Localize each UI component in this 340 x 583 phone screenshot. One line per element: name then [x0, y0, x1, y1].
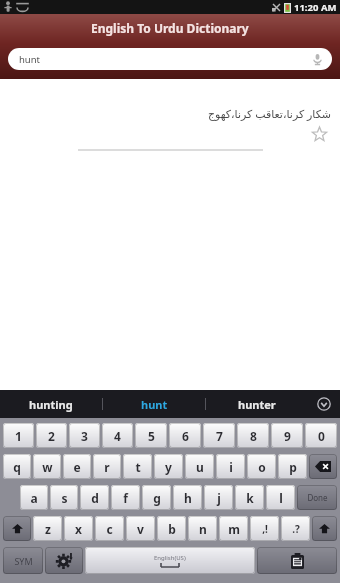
staticText: 4	[114, 428, 121, 444]
staticText: t	[135, 459, 141, 475]
staticText: 5	[148, 428, 155, 444]
button[interactable]: Space	[85, 547, 255, 574]
staticText: i	[229, 459, 233, 475]
button[interactable]: Shift	[3, 516, 31, 541]
staticText: s	[61, 490, 68, 506]
staticText: English(US)	[154, 554, 186, 562]
button[interactable]: 3	[69, 423, 100, 448]
button[interactable]: w	[33, 454, 61, 479]
button[interactable]: 7	[203, 423, 235, 448]
staticText: hunt	[19, 53, 41, 66]
button[interactable]: p	[278, 454, 307, 479]
staticText: hunt	[141, 397, 168, 412]
staticText: 8	[250, 428, 257, 444]
button[interactable]: 1	[3, 423, 34, 448]
button[interactable]: .?	[281, 516, 310, 541]
staticText: 2	[48, 428, 55, 444]
staticText: ,!	[262, 522, 268, 536]
button[interactable]: Done	[297, 485, 337, 510]
button[interactable]: v	[126, 516, 155, 541]
button[interactable]: 8	[237, 423, 269, 448]
staticText: x	[75, 521, 82, 537]
staticText: k	[246, 490, 254, 506]
button[interactable]: c	[95, 516, 124, 541]
button[interactable]: hunter	[206, 390, 308, 418]
button[interactable]: hunt	[103, 390, 205, 418]
staticText: v	[137, 521, 144, 537]
button[interactable]: ,!	[250, 516, 279, 541]
staticText: f	[123, 490, 128, 506]
staticText: d	[91, 490, 99, 506]
staticText: g	[153, 490, 161, 506]
button[interactable]: Add to favourites	[310, 125, 328, 143]
staticText: u	[196, 459, 204, 475]
button[interactable]: hunting	[0, 390, 102, 418]
staticText: .?	[292, 522, 300, 536]
button[interactable]: u	[185, 454, 214, 479]
button[interactable]: r	[93, 454, 121, 479]
button[interactable]: x	[64, 516, 93, 541]
staticText: a	[30, 490, 38, 506]
button[interactable]: More suggestions	[308, 390, 340, 418]
button[interactable]: m	[219, 516, 248, 541]
button[interactable]: 4	[102, 423, 133, 448]
staticText: hunting	[29, 397, 73, 412]
staticText: SYM	[14, 555, 33, 567]
staticText: y	[165, 459, 172, 475]
button[interactable]: h	[173, 485, 202, 510]
staticText: 1	[15, 428, 22, 444]
button[interactable]: n	[188, 516, 217, 541]
button[interactable]: z	[33, 516, 62, 541]
button[interactable]: e	[63, 454, 91, 479]
button[interactable]: k	[235, 485, 264, 510]
button[interactable]: i	[216, 454, 245, 479]
staticText: 11:20 AM	[294, 1, 337, 14]
button[interactable]: Shift	[312, 516, 337, 541]
staticText: p	[289, 459, 297, 475]
button[interactable]: Backspace	[309, 454, 337, 479]
button[interactable]: 6	[169, 423, 201, 448]
button[interactable]: q	[3, 454, 31, 479]
staticText: z	[45, 521, 51, 537]
staticText: j	[217, 490, 221, 506]
button[interactable]: d	[80, 485, 109, 510]
button[interactable]: 9	[271, 423, 303, 448]
staticText: r	[104, 459, 110, 475]
staticText: m	[228, 521, 240, 537]
staticText: شکار کرنا،تعاقب کرنا،کھوج	[0, 106, 331, 121]
button[interactable]: SYM	[3, 547, 43, 574]
button[interactable]: t	[123, 454, 152, 479]
button[interactable]: o	[247, 454, 276, 479]
button[interactable]: 0	[305, 423, 337, 448]
staticText: o	[258, 459, 266, 475]
staticText: w	[42, 459, 53, 475]
button[interactable]: Clipboard	[257, 547, 337, 574]
button[interactable]: hunt	[8, 48, 332, 70]
button[interactable]: f	[111, 485, 140, 510]
button[interactable]: 2	[36, 423, 67, 448]
staticText: 9	[284, 428, 291, 444]
button[interactable]: g	[142, 485, 171, 510]
button[interactable]: Voice search	[309, 51, 325, 67]
staticText: 0	[318, 428, 325, 444]
staticText: l	[279, 490, 283, 506]
staticText: h	[184, 490, 192, 506]
button[interactable]: y	[154, 454, 183, 479]
button[interactable]: j	[204, 485, 233, 510]
staticText: q	[13, 459, 21, 475]
button[interactable]: Keyboard settings	[45, 547, 83, 574]
staticText: e	[73, 459, 81, 475]
staticText: b	[168, 521, 176, 537]
staticText: English To Urdu Dictionary	[91, 20, 249, 36]
staticText: Done	[307, 492, 328, 503]
staticText: n	[199, 521, 207, 537]
button[interactable]: b	[157, 516, 186, 541]
button[interactable]: a	[20, 485, 48, 510]
button[interactable]: s	[50, 485, 78, 510]
button[interactable]: 5	[135, 423, 167, 448]
staticText: hunter	[238, 397, 276, 412]
staticText: c	[106, 521, 113, 537]
staticText: 6	[182, 428, 189, 444]
staticText: 7	[216, 428, 223, 444]
button[interactable]: l	[266, 485, 295, 510]
